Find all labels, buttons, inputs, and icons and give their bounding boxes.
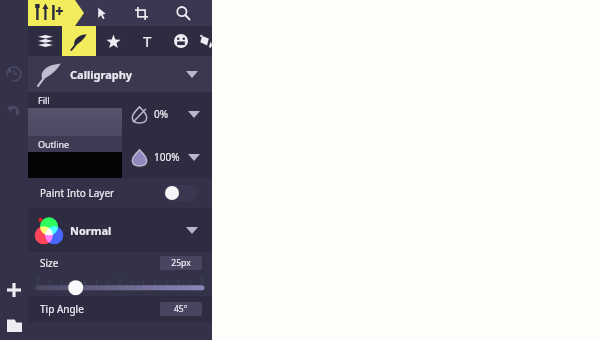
button[interactable]: Select <box>88 0 114 26</box>
staticText: T <box>143 31 152 51</box>
staticText: 100% <box>154 150 180 164</box>
staticText: Fill <box>38 94 50 106</box>
button[interactable]: Stickers <box>164 26 198 56</box>
button[interactable]: Zoom <box>170 0 196 26</box>
staticText: Outline <box>38 138 70 150</box>
button[interactable]: Undo <box>0 96 28 124</box>
button[interactable]: Shapes <box>96 26 130 56</box>
button[interactable]: Brush <box>62 26 96 56</box>
button[interactable]: Size slider <box>28 274 212 296</box>
button[interactable]: History <box>0 60 28 88</box>
button[interactable]: Calligraphy <box>28 56 212 92</box>
button[interactable]: Layers folder <box>0 310 28 338</box>
button[interactable]: Crop <box>128 0 154 26</box>
button[interactable]: 25px <box>160 256 202 270</box>
button[interactable]: Add layer <box>0 276 28 304</box>
button[interactable]: Tools tab <box>28 0 84 26</box>
staticText: Size <box>40 256 59 270</box>
staticText: Calligraphy <box>70 67 133 82</box>
staticText: Paint Into Layer <box>40 186 115 200</box>
staticText: 45° <box>174 303 188 315</box>
staticText: Tip Angle <box>40 302 84 316</box>
staticText: 25px <box>171 257 191 269</box>
button[interactable]: Layers <box>28 26 62 56</box>
button[interactable]: Normal <box>28 208 212 252</box>
button[interactable]: Tip Angle <box>28 296 212 322</box>
button[interactable]: Paint Into Layer <box>28 178 212 208</box>
staticText: Normal <box>70 223 112 238</box>
button[interactable]: 100% <box>122 136 212 178</box>
button[interactable]: Fill bucket <box>198 26 212 56</box>
staticText: 0% <box>154 107 169 121</box>
button[interactable]: Text <box>130 26 164 56</box>
button[interactable]: 0% <box>122 92 212 136</box>
